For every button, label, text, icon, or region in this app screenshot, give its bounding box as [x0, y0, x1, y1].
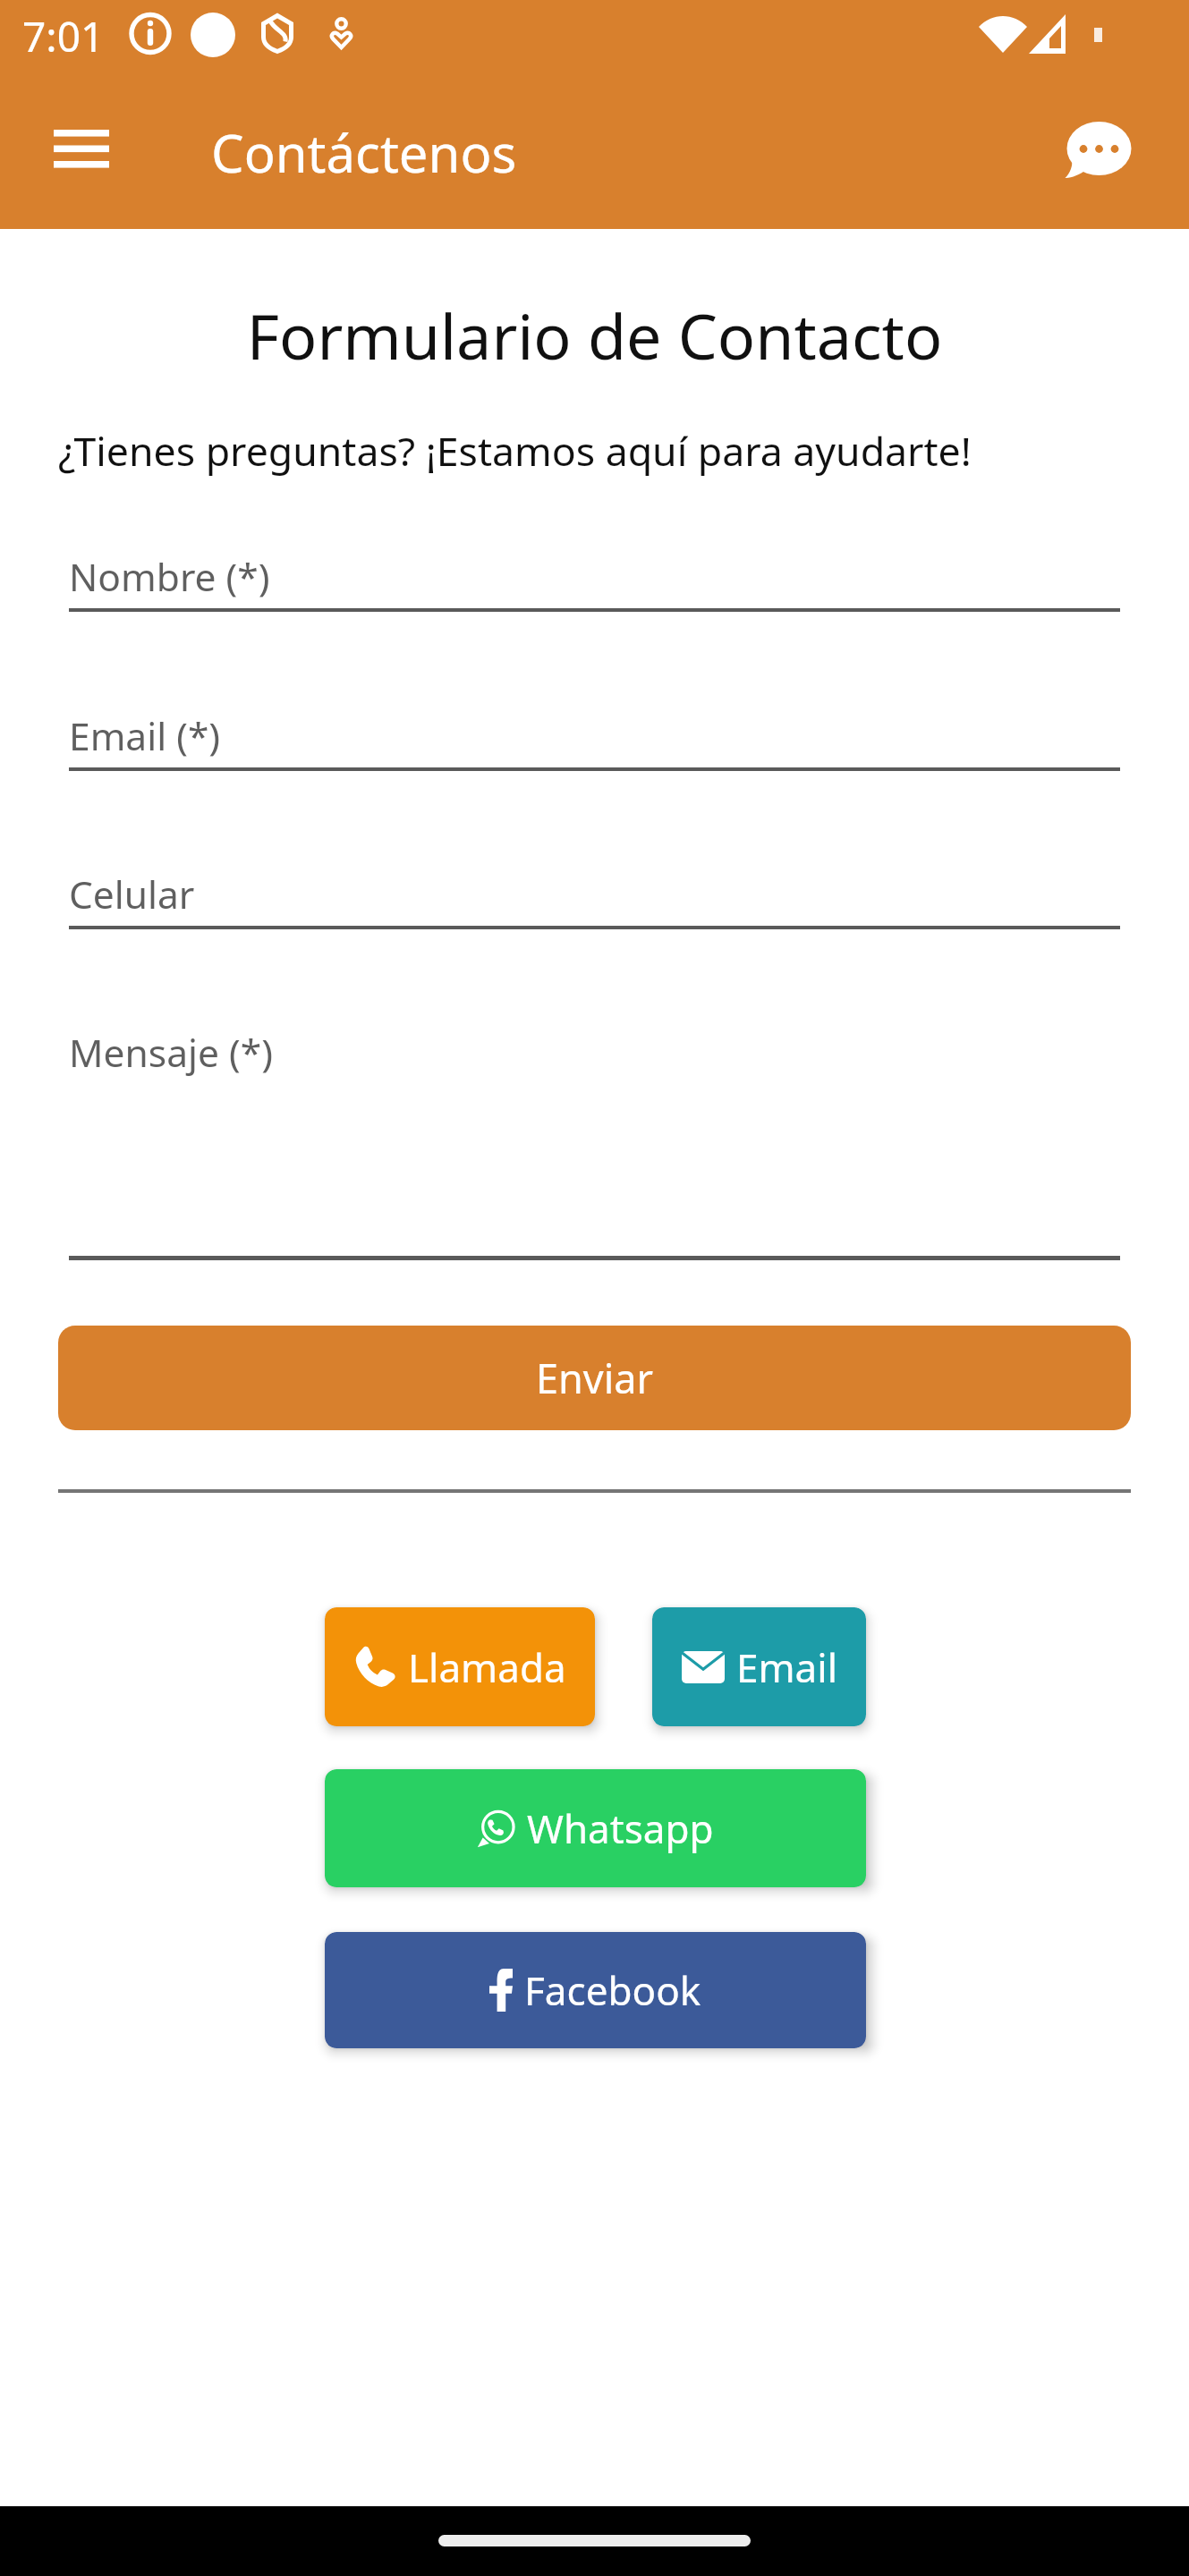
button[interactable]: Facebook — [325, 1932, 866, 2048]
staticText: Llamada — [408, 1640, 566, 1694]
staticText: Whatsapp — [527, 1801, 714, 1855]
staticText: 7:01 — [22, 8, 105, 64]
staticText: Email (*) — [69, 710, 221, 762]
button[interactable]: Enviar — [58, 1326, 1131, 1430]
button[interactable]: Whatsapp — [325, 1769, 866, 1887]
button[interactable]: Menu — [54, 130, 109, 169]
staticText: Celular — [69, 869, 195, 920]
button[interactable]: Llamada — [325, 1607, 595, 1726]
staticText: Contáctenos — [211, 117, 517, 188]
staticText: Mensaje (*) — [69, 1027, 273, 1079]
staticText: Formulario de Contacto — [0, 292, 1189, 377]
staticText: Email — [736, 1640, 837, 1694]
button[interactable]: Email — [652, 1607, 866, 1726]
staticText: Enviar — [536, 1351, 654, 1405]
staticText: Facebook — [524, 1963, 701, 2017]
staticText: ¿Tienes preguntas? ¡Estamos aquí para ay… — [58, 423, 972, 478]
staticText: Nombre (*) — [69, 551, 270, 603]
button[interactable]: Chat — [1038, 98, 1152, 197]
